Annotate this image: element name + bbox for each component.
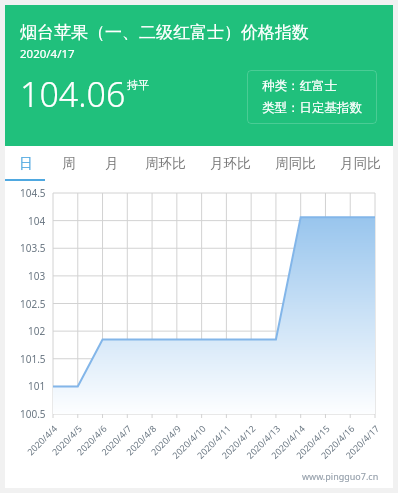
staticText: 月同比	[340, 155, 381, 172]
button[interactable]: 日	[5, 146, 47, 181]
staticText: 周环比	[145, 155, 186, 172]
staticText: 104.06	[20, 71, 126, 117]
button[interactable]: 周环比	[133, 146, 198, 181]
staticText: 日	[19, 155, 33, 172]
staticText: 月	[105, 155, 119, 172]
staticText: 周	[62, 155, 76, 172]
button[interactable]: 月同比	[328, 146, 393, 181]
staticText: 月环比	[210, 155, 251, 172]
button[interactable]: 周同比	[263, 146, 328, 181]
staticText: 2020/4/17	[20, 46, 75, 62]
staticText: 种类：红富士	[262, 78, 337, 94]
staticText: 烟台苹果（一、二级红富士）价格指数	[20, 22, 309, 43]
staticText: 类型：日定基指数	[262, 100, 362, 116]
staticText: 周同比	[275, 155, 316, 172]
staticText: 持平	[127, 78, 149, 92]
button[interactable]: 周	[47, 146, 90, 181]
button[interactable]: 月环比	[198, 146, 263, 181]
button[interactable]: 月	[90, 146, 133, 181]
